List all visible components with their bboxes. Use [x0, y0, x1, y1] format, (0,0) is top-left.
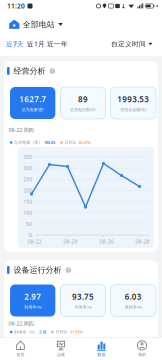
- button[interactable]: 帮助: [50, 68, 55, 74]
- staticText: -11.92%: [69, 329, 83, 335]
- staticText: 2.97: [24, 291, 41, 302]
- staticText: 可用率(%): [74, 304, 91, 310]
- staticText: 08-22 周四: [8, 126, 33, 134]
- button[interactable]: 运维: [55, 340, 66, 357]
- button[interactable]: 首页: [15, 340, 26, 357]
- staticText: 08-28: [135, 238, 149, 245]
- staticText: 0: [28, 231, 31, 239]
- button[interactable]: 近7天: [6, 40, 24, 48]
- staticText: 1993.53: [117, 94, 149, 104]
- staticText: 总充电次数(次): [70, 107, 96, 112]
- staticText: 350: [23, 153, 32, 161]
- staticText: ?: [51, 68, 53, 74]
- staticText: 250: [23, 176, 32, 183]
- staticText: 93.75: [72, 291, 94, 302]
- staticText: 设备运行分析: [14, 265, 62, 275]
- staticText: 经营分析: [14, 66, 46, 76]
- staticText: 近1月: [27, 40, 45, 48]
- staticText: 150: [23, 198, 32, 205]
- staticText: 利用率(%): [24, 304, 41, 310]
- staticText: 首页: [16, 352, 24, 357]
- staticText: ?: [67, 267, 69, 273]
- button[interactable]: 近1月: [27, 40, 45, 48]
- staticText: 2.18: [39, 329, 46, 335]
- staticText: 日环比: [55, 329, 67, 334]
- staticText: 数据: [97, 352, 105, 357]
- staticText: 日环比: [64, 140, 76, 145]
- staticText: 186.83: [44, 140, 55, 145]
- staticText: 充电总金额(元): [120, 107, 146, 112]
- staticText: 总充电量（度）: [14, 140, 42, 145]
- staticText: 89: [78, 94, 88, 104]
- staticText: 全部电站: [23, 20, 55, 29]
- staticText: 50: [26, 220, 32, 227]
- staticText: 近一年: [47, 40, 68, 48]
- staticText: 利用率（%）: [14, 329, 37, 335]
- staticText: 运维: [57, 352, 65, 357]
- staticText: 08-24: [63, 238, 77, 245]
- button[interactable]: 我的: [136, 340, 147, 357]
- staticText: 26.23%: [78, 140, 91, 145]
- staticText: 08-22: [27, 238, 41, 245]
- button[interactable]: 自定义时间: [111, 40, 153, 48]
- button[interactable]: 帮助: [66, 267, 71, 273]
- staticText: 300: [23, 165, 32, 172]
- button[interactable]: 数据: [96, 340, 107, 357]
- staticText: 200: [23, 187, 32, 194]
- staticText: 离线率(%): [125, 304, 142, 310]
- staticText: 我的: [138, 352, 146, 357]
- staticText: 08-22 周四: [8, 320, 33, 327]
- staticText: 1627.7: [19, 94, 46, 104]
- staticText: 6.03: [125, 291, 142, 302]
- staticText: 11:20: [7, 2, 25, 10]
- staticText: 近7天: [6, 40, 24, 48]
- staticText: 08-26: [99, 238, 113, 245]
- button[interactable]: 近一年: [47, 40, 68, 48]
- button[interactable]: 全部电站: [9, 19, 63, 30]
- staticText: 总充电量(度): [22, 107, 44, 112]
- staticText: 100: [23, 209, 32, 216]
- staticText: 自定义时间: [111, 40, 146, 48]
